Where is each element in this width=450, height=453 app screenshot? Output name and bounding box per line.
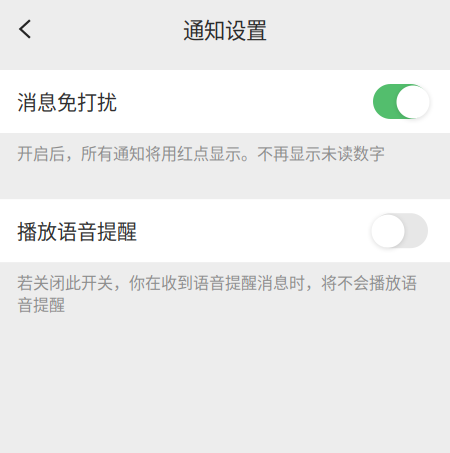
staticText: 消息免打扰 (17, 87, 117, 116)
button[interactable]: Back (0, 7, 48, 51)
button[interactable]: 播放语音提醒 (0, 199, 450, 262)
button[interactable]: 消息免打扰 (0, 70, 450, 133)
staticText: 若关闭此开关，你在收到语音提醒消息时，将不会播放语音提醒 (17, 270, 417, 315)
staticText: 通知设置 (183, 14, 267, 44)
staticText: 播放语音提醒 (17, 216, 137, 245)
staticText: 开启后，所有通知将用红点显示。不再显示未读数字 (17, 141, 385, 164)
